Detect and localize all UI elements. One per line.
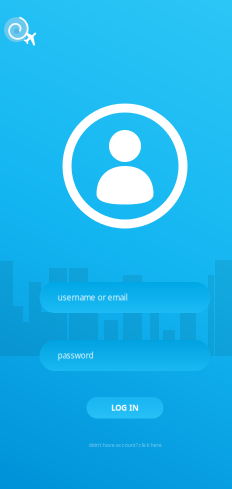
button[interactable]: username or email <box>39 282 210 313</box>
button[interactable]: App logo <box>2 12 42 52</box>
staticText: didn't have account? click here <box>88 441 161 449</box>
button[interactable]: password <box>39 340 210 371</box>
staticText: username or email <box>57 292 127 303</box>
button[interactable]: LOG IN <box>86 397 163 418</box>
staticText: LOG IN <box>111 402 139 413</box>
staticText: password <box>57 350 93 361</box>
button[interactable]: didn't have account? click here <box>65 440 185 450</box>
